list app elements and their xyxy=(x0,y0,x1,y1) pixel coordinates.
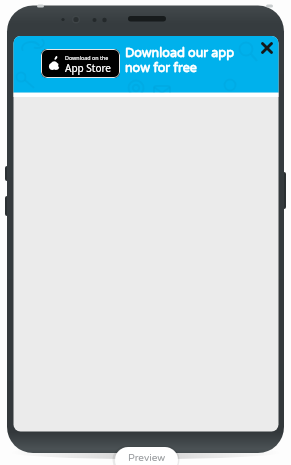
staticText: Download our app xyxy=(125,46,235,61)
button[interactable]: Preview xyxy=(115,447,178,465)
button[interactable]: Download on the xyxy=(41,49,120,78)
staticText: App Store xyxy=(65,61,112,75)
staticText: Preview xyxy=(128,452,166,464)
staticText: Download on the xyxy=(65,54,109,61)
button[interactable] xyxy=(258,39,276,57)
staticText: now for free xyxy=(125,61,197,76)
